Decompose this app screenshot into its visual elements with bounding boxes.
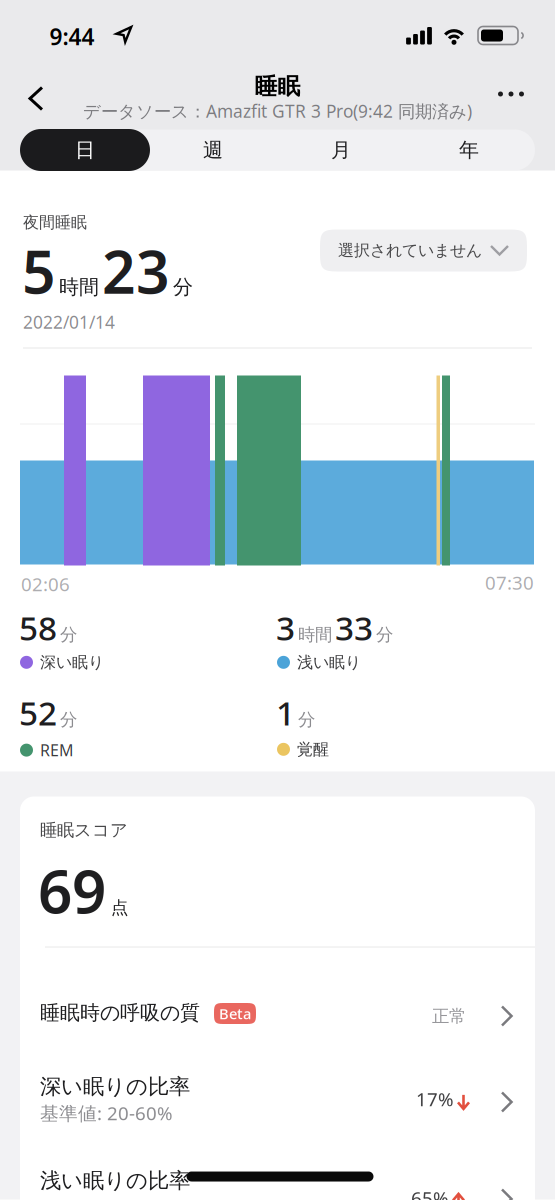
button[interactable]: 深い眠りの比率 <box>20 1059 535 1129</box>
button[interactable]: 週 <box>149 129 277 171</box>
staticText: 日 <box>75 138 95 162</box>
button[interactable]: 睡眠時の呼吸の質 <box>20 994 535 1044</box>
staticText: 9:44 <box>49 21 94 51</box>
staticText: 夜間睡眠 <box>23 212 87 232</box>
staticText: 時間 <box>59 275 99 299</box>
staticText: 深い眠り <box>40 652 104 672</box>
staticText: 基準値: 20-60% <box>40 1100 173 1125</box>
staticText: 月 <box>331 138 351 162</box>
button[interactable]: 年 <box>405 129 533 171</box>
staticText: 点 <box>111 897 128 918</box>
staticText: 02:06 <box>21 571 70 596</box>
staticText: 選択されていません <box>338 241 482 260</box>
staticText: 65% <box>411 1185 449 1200</box>
button[interactable]: 浅い眠りの比率 <box>20 1154 535 1200</box>
staticText: 69 <box>38 850 106 930</box>
button[interactable]: 選択されていません <box>320 229 527 271</box>
button[interactable] <box>488 81 534 106</box>
staticText: 年 <box>459 138 479 162</box>
staticText: 07:30 <box>485 570 534 595</box>
staticText: 1 <box>276 690 295 735</box>
staticText: 52 <box>19 690 57 735</box>
staticText: 分 <box>60 624 77 645</box>
staticText: 分 <box>376 624 393 645</box>
staticText: 浅い眠り <box>297 652 361 672</box>
staticText: 深い眠りの比率 <box>40 1073 190 1100</box>
staticText: 睡眠 <box>254 72 300 100</box>
staticText: 分 <box>60 709 77 730</box>
button[interactable]: 日 <box>20 129 150 171</box>
staticText: 浅い眠りの比率 <box>40 1167 190 1194</box>
staticText: 23 <box>102 232 170 310</box>
staticText: データソース：Amazfit GTR 3 Pro(9:42 同期済み) <box>83 99 472 122</box>
staticText: 5 <box>22 232 56 310</box>
staticText: 正常 <box>432 1005 466 1027</box>
staticText: 時間 <box>298 624 332 645</box>
staticText: 17% <box>416 1086 454 1111</box>
button[interactable]: 月 <box>277 129 405 171</box>
staticText: 分 <box>298 709 315 730</box>
staticText: 33 <box>335 605 373 650</box>
staticText: REM <box>40 739 74 761</box>
button[interactable] <box>18 75 55 121</box>
staticText: 週 <box>203 138 223 162</box>
staticText: 3 <box>276 605 295 650</box>
staticText: 2022/01/14 <box>23 310 115 333</box>
staticText: Beta <box>219 1004 251 1023</box>
staticText: 58 <box>19 605 57 650</box>
staticText: 睡眠時の呼吸の質 <box>40 1000 200 1025</box>
staticText: 覚醒 <box>297 739 329 759</box>
staticText: 睡眠スコア <box>40 819 128 841</box>
staticText: 分 <box>173 275 193 299</box>
